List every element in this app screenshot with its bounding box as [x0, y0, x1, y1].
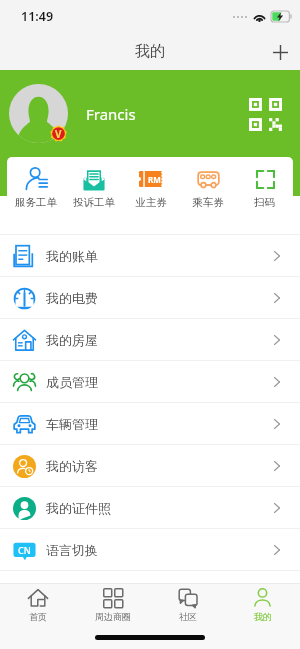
- staticText: V: [55, 127, 62, 141]
- button[interactable]: 车辆管理: [0, 403, 300, 444]
- staticText: 业主券: [135, 196, 167, 209]
- staticText: Francis: [86, 104, 136, 124]
- button[interactable]: 我的房屋: [0, 319, 300, 360]
- staticText: 周边商圈: [95, 611, 131, 622]
- staticText: CN: [18, 544, 31, 556]
- staticText: 投诉工单: [73, 196, 115, 209]
- button[interactable]: [9, 84, 68, 143]
- button[interactable]: Scan QR code: [248, 97, 282, 131]
- staticText: 我的证件照: [46, 500, 111, 516]
- button[interactable]: 我的: [225, 584, 300, 624]
- staticText: 扫码: [254, 196, 275, 209]
- staticText: 我的: [254, 611, 272, 622]
- staticText: 乘车券: [192, 196, 224, 209]
- staticText: 语言切换: [46, 542, 98, 558]
- staticText: 我的访客: [46, 458, 98, 474]
- staticText: 我的房屋: [46, 332, 98, 348]
- staticText: 社区: [179, 611, 197, 622]
- button[interactable]: 首页: [0, 584, 75, 624]
- button[interactable]: 扫码: [236, 157, 293, 218]
- button[interactable]: 我的访客: [0, 445, 300, 486]
- button[interactable]: 我的账单: [0, 235, 300, 276]
- staticText: 成员管理: [46, 374, 98, 390]
- staticText: RM: [148, 174, 161, 185]
- staticText: 11:49: [21, 8, 54, 25]
- staticText: 我的电费: [46, 290, 98, 306]
- button[interactable]: 乘车券: [179, 157, 236, 218]
- staticText: 服务工单: [15, 196, 57, 209]
- staticText: 首页: [29, 611, 47, 622]
- button[interactable]: 我的证件照: [0, 487, 300, 528]
- button[interactable]: 周边商圈: [75, 584, 150, 624]
- staticText: 车辆管理: [46, 416, 98, 432]
- button[interactable]: 社区: [150, 584, 225, 624]
- button[interactable]: 服务工单: [7, 157, 65, 218]
- button[interactable]: 投诉工单: [65, 157, 122, 218]
- button[interactable]: CN: [0, 529, 300, 570]
- button[interactable]: 我的电费: [0, 277, 300, 318]
- button[interactable]: 成员管理: [0, 361, 300, 402]
- button[interactable]: RM: [122, 157, 179, 218]
- button[interactable]: Add: [258, 30, 300, 74]
- staticText: 我的: [135, 42, 165, 61]
- staticText: 我的账单: [46, 248, 98, 264]
